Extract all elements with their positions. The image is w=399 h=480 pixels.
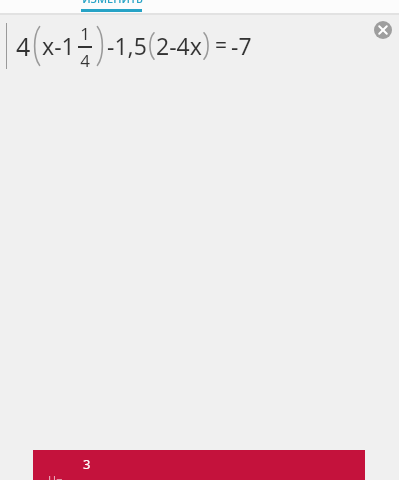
staticText: Ц= <box>48 472 63 480</box>
staticText: 4 <box>80 49 90 69</box>
staticText: ИЗМЕНИТЬ <box>82 0 143 4</box>
staticText: 2-4x <box>156 30 202 61</box>
staticText: x-1 <box>42 30 75 61</box>
button[interactable]: Close <box>374 21 392 39</box>
staticText: 3 <box>83 455 91 473</box>
staticText: = <box>215 31 228 60</box>
staticText: -1,5 <box>107 30 147 61</box>
staticText: -7 <box>231 30 252 61</box>
staticText: 4 <box>16 29 31 63</box>
button[interactable]: 3 <box>33 450 365 480</box>
staticText: 1 <box>80 22 90 45</box>
button[interactable]: ИЗМЕНИТЬ <box>73 0 151 4</box>
